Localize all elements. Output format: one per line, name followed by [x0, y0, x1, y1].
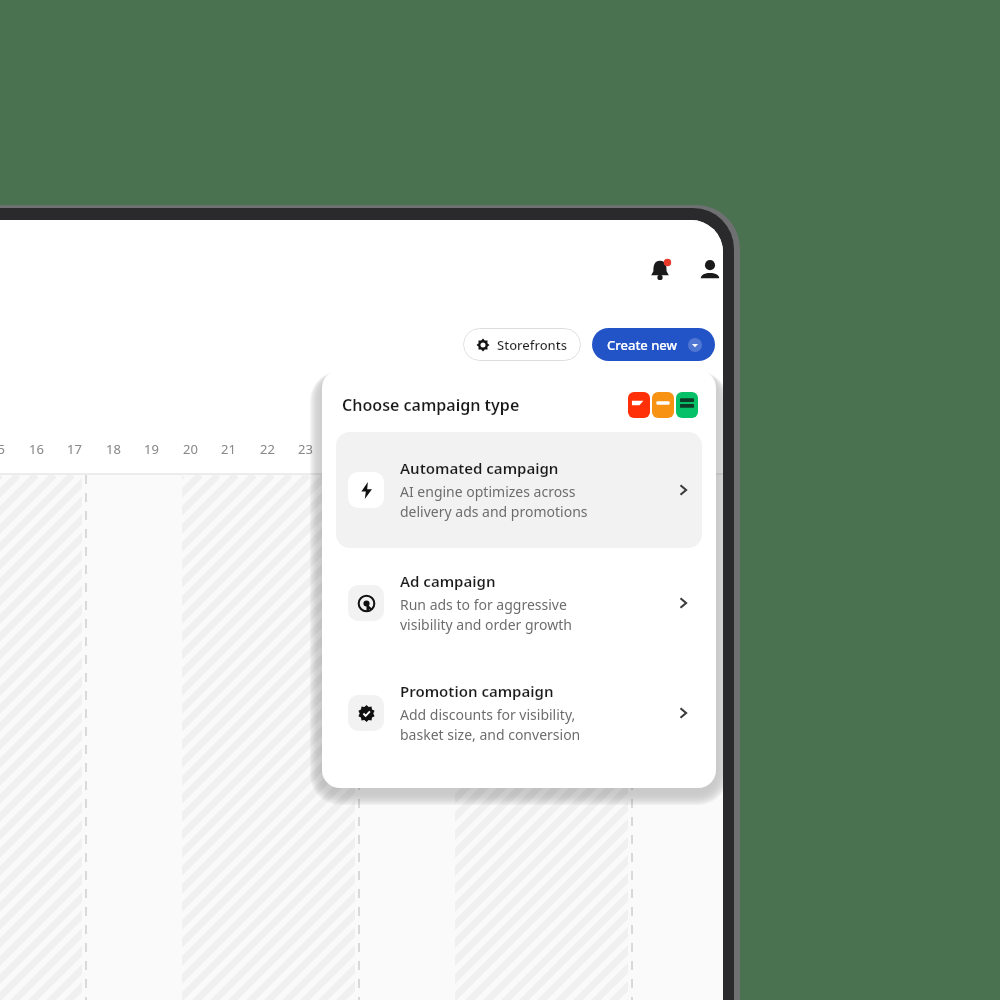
staticText: 16	[29, 440, 44, 458]
staticText: AI engine optimizes across delivery ads …	[400, 482, 588, 522]
staticText: Automated campaign	[400, 458, 559, 478]
staticText: Run ads to for aggressive visibility and…	[400, 595, 572, 635]
button[interactable]: Ad campaign	[336, 548, 702, 658]
staticText: 21	[221, 440, 236, 458]
staticText: 17	[67, 440, 82, 458]
staticText: Create new	[607, 336, 678, 354]
staticText: Add discounts for visibility, basket siz…	[400, 705, 581, 745]
staticText: 22	[260, 440, 275, 458]
button[interactable]: Account	[690, 250, 723, 290]
staticText: Ad campaign	[400, 571, 496, 591]
staticText: Storefronts	[497, 336, 568, 354]
staticText: Promotion campaign	[400, 681, 554, 701]
button[interactable]: Notifications	[640, 250, 680, 290]
button[interactable]: Promotion campaign	[336, 658, 702, 768]
staticText: 23	[298, 440, 313, 458]
button[interactable]: Storefronts	[463, 328, 581, 361]
staticText: 15	[0, 440, 5, 458]
button[interactable]: Automated campaign	[336, 432, 702, 548]
button[interactable]: Create new	[592, 328, 715, 361]
staticText: 19	[144, 440, 159, 458]
staticText: 20	[183, 440, 198, 458]
staticText: Choose campaign type	[342, 394, 520, 416]
staticText: 18	[106, 440, 121, 458]
